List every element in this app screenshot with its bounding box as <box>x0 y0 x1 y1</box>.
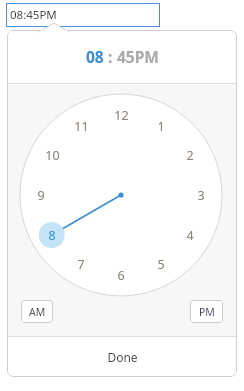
staticText: Done <box>107 349 138 365</box>
staticText: 8 <box>48 227 56 244</box>
staticText: 2 <box>186 147 194 164</box>
button[interactable]: 45PM <box>117 46 159 67</box>
staticText: 4 <box>186 227 194 244</box>
staticText: AM <box>29 305 46 319</box>
staticText: 5 <box>157 256 165 273</box>
staticText: 45PM <box>117 46 159 67</box>
button[interactable]: PM <box>190 300 223 323</box>
staticText: 6 <box>117 267 125 284</box>
button[interactable]: 11 <box>70 117 92 135</box>
button[interactable]: 08:45PM <box>6 3 160 27</box>
button[interactable]: 12 <box>110 106 132 124</box>
button[interactable]: 8 <box>41 226 63 244</box>
button[interactable]: 4 <box>179 226 201 244</box>
button[interactable]: Clock face, select hour <box>7 84 237 336</box>
button[interactable]: 7 <box>70 255 92 273</box>
staticText: 10 <box>45 147 60 164</box>
staticText: 3 <box>197 187 205 204</box>
staticText: PM <box>199 305 215 319</box>
staticText: 1 <box>157 118 165 135</box>
staticText: : <box>104 46 117 67</box>
button[interactable]: 2 <box>179 146 201 164</box>
button[interactable]: 9 <box>30 186 52 204</box>
button[interactable]: 1 <box>150 117 172 135</box>
button[interactable]: AM <box>21 300 53 323</box>
button[interactable]: 3 <box>190 186 212 204</box>
button[interactable]: 6 <box>110 266 132 284</box>
button[interactable]: 10 <box>41 146 63 164</box>
button[interactable]: 08 <box>86 46 104 67</box>
staticText: 7 <box>77 256 85 273</box>
staticText: 11 <box>74 118 89 135</box>
staticText: 08 <box>86 46 104 67</box>
staticText: 12 <box>114 107 129 124</box>
button[interactable]: Done <box>7 337 237 376</box>
staticText: 08:45PM <box>10 7 57 23</box>
staticText: 9 <box>37 187 45 204</box>
button[interactable]: 5 <box>150 255 172 273</box>
